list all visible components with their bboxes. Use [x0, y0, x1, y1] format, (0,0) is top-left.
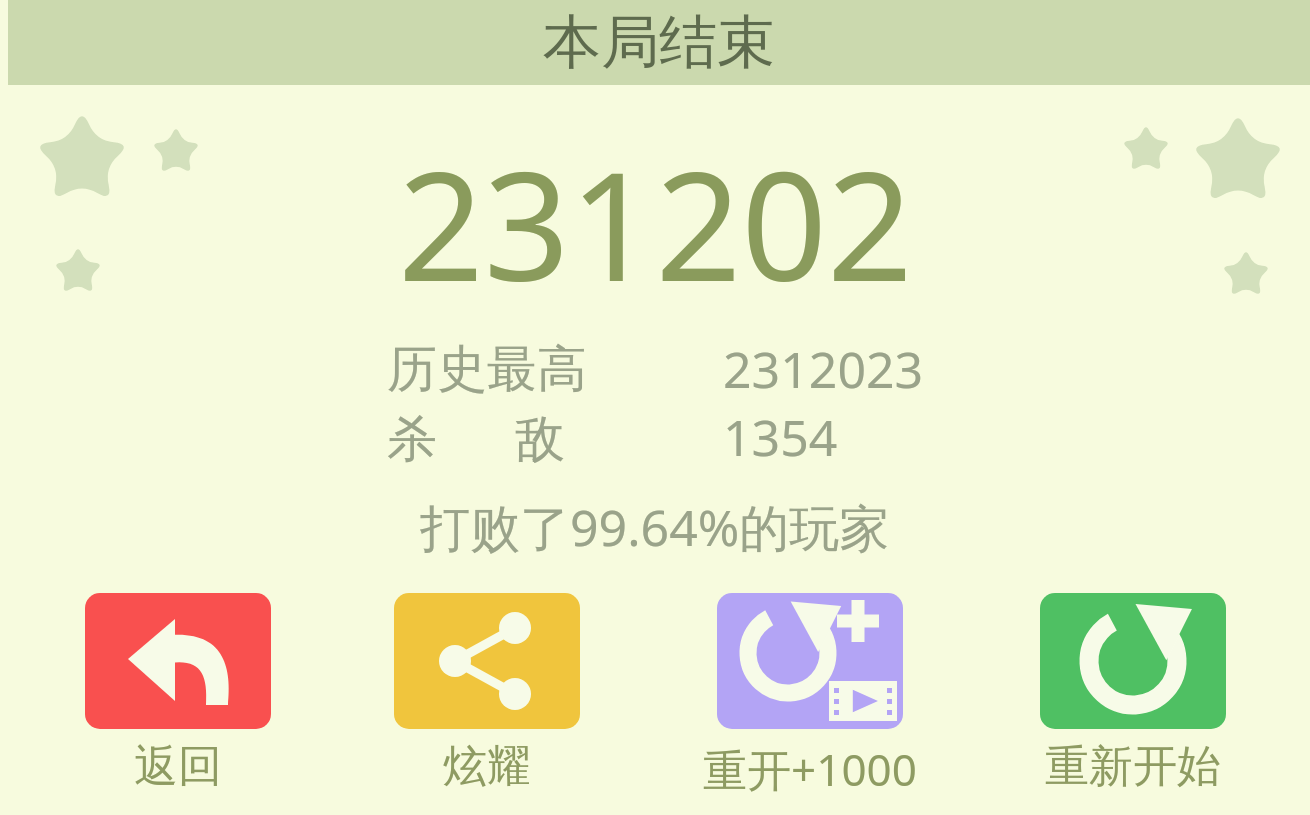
staticText: 打败了99.64%的玩家 — [420, 493, 890, 561]
staticText: 返回 — [134, 739, 222, 794]
staticText: 1354 — [723, 403, 838, 471]
staticText: 杀 敌 — [387, 403, 565, 471]
staticText: 炫耀 — [443, 739, 531, 794]
button[interactable]: 重新开始 — [1040, 593, 1226, 729]
staticText: 本局结束 — [543, 6, 775, 79]
button[interactable]: 返回 — [85, 593, 271, 729]
button[interactable]: 炫耀 — [394, 593, 580, 729]
staticText: 231202 — [398, 121, 913, 325]
staticText: 2312023 — [723, 335, 924, 403]
staticText: 重新开始 — [1045, 739, 1221, 794]
button[interactable]: 重开加1000 — [717, 593, 903, 729]
staticText: 重开+1000 — [703, 739, 917, 799]
staticText: 历史最高 — [387, 338, 587, 401]
